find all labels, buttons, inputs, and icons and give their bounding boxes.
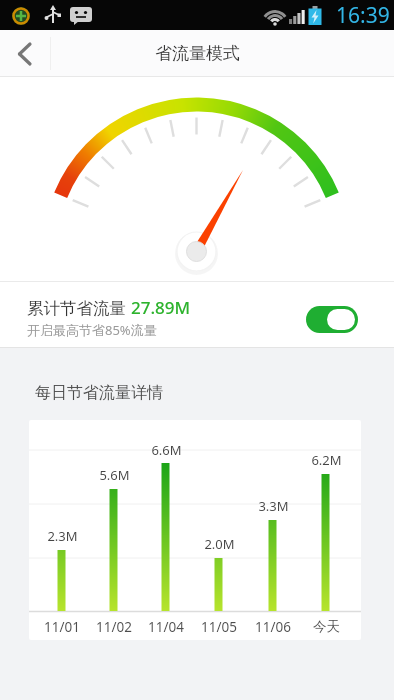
- staticText: 11/01: [44, 618, 80, 636]
- staticText: 3.3M: [258, 497, 289, 515]
- staticText: 11/05: [201, 618, 237, 636]
- staticText: 今天: [313, 618, 340, 635]
- staticText: 11/04: [148, 618, 184, 636]
- staticText: 2.0M: [204, 535, 235, 553]
- staticText: 每日节省流量详情: [35, 383, 163, 403]
- staticText: 16:39: [336, 1, 390, 30]
- button[interactable]: 累计节省流量: [27, 296, 287, 319]
- staticText: 6.2M: [311, 451, 342, 469]
- staticText: 6.6M: [151, 441, 182, 459]
- staticText: 11/02: [96, 618, 132, 636]
- staticText: 2.3M: [47, 527, 78, 545]
- button[interactable]: [306, 306, 358, 333]
- button[interactable]: [0, 30, 50, 77]
- staticText: 省流量模式: [155, 43, 240, 64]
- button[interactable]: 2.3M: [29, 420, 361, 640]
- staticText: 开启最高节省85%流量: [27, 321, 157, 339]
- staticText: 5.6M: [99, 466, 130, 484]
- staticText: 27.89M: [131, 296, 191, 319]
- staticText: 累计节省流量: [27, 296, 131, 319]
- staticText: 11/06: [255, 618, 291, 636]
